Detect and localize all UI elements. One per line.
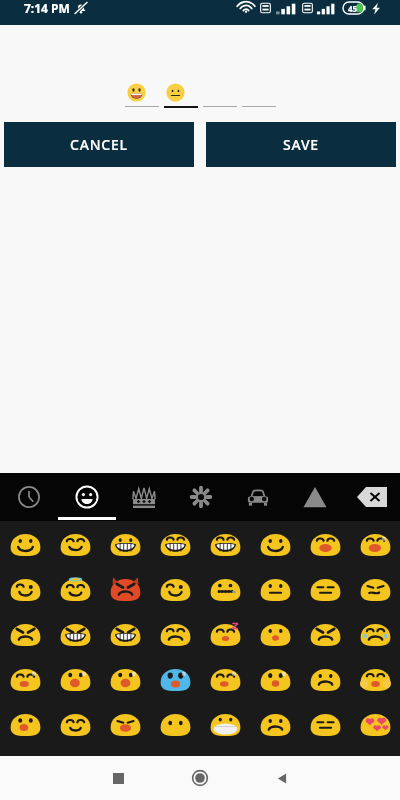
button[interactable]	[300, 656, 350, 701]
button[interactable]	[300, 566, 350, 611]
button[interactable]	[300, 701, 350, 746]
button[interactable]: Backspace	[343, 473, 400, 521]
button[interactable]	[200, 701, 250, 746]
button[interactable]	[150, 611, 200, 656]
button[interactable]	[350, 656, 400, 701]
button[interactable]	[300, 521, 350, 566]
button[interactable]	[0, 656, 50, 701]
button[interactable]: SAVE	[206, 122, 396, 167]
staticText: CANCEL	[70, 135, 128, 154]
button[interactable]: Nature	[172, 473, 229, 521]
staticText: 45	[348, 3, 358, 14]
button[interactable]	[350, 566, 400, 611]
button[interactable]	[250, 656, 300, 701]
button[interactable]: Symbols	[286, 473, 343, 521]
button[interactable]	[350, 521, 400, 566]
button[interactable]	[50, 521, 100, 566]
button[interactable]: Home	[159, 756, 241, 800]
button[interactable]	[100, 611, 150, 656]
button[interactable]	[200, 656, 250, 701]
button[interactable]	[203, 83, 237, 107]
button[interactable]: Crown	[115, 473, 172, 521]
button[interactable]: Smileys	[58, 473, 115, 521]
button[interactable]	[0, 701, 50, 746]
button[interactable]	[100, 656, 150, 701]
button[interactable]	[242, 83, 276, 107]
button[interactable]: Back	[241, 756, 323, 800]
button[interactable]	[250, 566, 300, 611]
button[interactable]	[150, 566, 200, 611]
button[interactable]	[250, 611, 300, 656]
button[interactable]	[50, 611, 100, 656]
staticText: SAVE	[283, 135, 319, 154]
button[interactable]	[0, 521, 50, 566]
button[interactable]	[300, 611, 350, 656]
button[interactable]	[250, 521, 300, 566]
button[interactable]	[200, 611, 250, 656]
button[interactable]	[164, 83, 198, 108]
staticText: 7:14 PM	[24, 0, 70, 16]
button[interactable]	[50, 566, 100, 611]
button[interactable]	[50, 701, 100, 746]
button[interactable]	[200, 521, 250, 566]
button[interactable]: Travel	[229, 473, 286, 521]
button[interactable]	[50, 656, 100, 701]
button[interactable]	[200, 566, 250, 611]
button[interactable]	[0, 566, 50, 611]
button[interactable]: CANCEL	[4, 122, 194, 167]
button[interactable]	[150, 656, 200, 701]
button[interactable]	[100, 566, 150, 611]
button[interactable]	[125, 83, 159, 107]
button[interactable]	[100, 521, 150, 566]
button[interactable]	[150, 701, 200, 746]
button[interactable]	[350, 611, 400, 656]
button[interactable]	[100, 701, 150, 746]
button[interactable]	[0, 611, 50, 656]
button[interactable]	[150, 521, 200, 566]
button[interactable]: Recent	[0, 473, 58, 521]
button[interactable]	[350, 701, 400, 746]
button[interactable]	[250, 701, 300, 746]
button[interactable]: Recents	[77, 756, 159, 800]
